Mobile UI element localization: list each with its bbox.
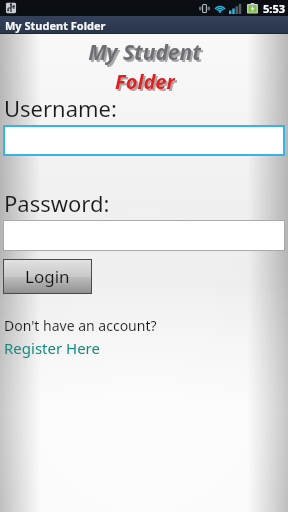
button[interactable]: Register Here (4, 338, 100, 358)
staticText: My Student (88, 38, 201, 67)
staticText: Folder (117, 70, 177, 92)
staticText: Folder (115, 68, 175, 90)
staticText: My Student Folder (5, 18, 106, 33)
staticText: My Student (90, 40, 203, 69)
button[interactable] (3, 125, 285, 156)
staticText: Login (25, 265, 70, 288)
staticText: 5:53 (263, 1, 285, 16)
staticText: Username: (4, 93, 117, 123)
button[interactable] (3, 220, 285, 251)
staticText: Password: (4, 188, 110, 218)
staticText: Don't have an account? (4, 316, 157, 335)
button[interactable]: Login (3, 259, 92, 294)
staticText: Register Here (4, 338, 100, 358)
